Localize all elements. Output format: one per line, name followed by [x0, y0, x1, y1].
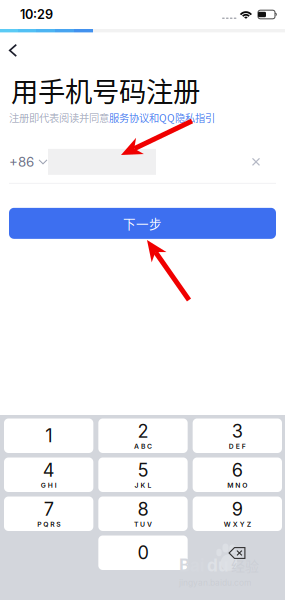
staticText: du	[207, 555, 229, 576]
button[interactable]: 7	[4, 496, 93, 531]
button[interactable]: Delete	[215, 536, 259, 570]
button[interactable]: 3	[193, 418, 282, 453]
staticText: 3	[232, 420, 243, 442]
staticText: P Q R S	[37, 520, 60, 528]
staticText: 7	[44, 498, 54, 520]
staticText: 0	[137, 542, 148, 564]
button[interactable]: 6	[193, 457, 282, 492]
staticText: J K L	[134, 481, 151, 489]
staticText: 经验	[231, 555, 259, 575]
staticText: 注册即代表阅读并同意	[9, 110, 109, 125]
staticText: 6	[232, 459, 243, 481]
button[interactable]: 下一步	[9, 208, 276, 239]
staticText: Bai	[179, 555, 205, 576]
staticText: A B C	[134, 442, 152, 450]
button[interactable]: 2	[98, 418, 188, 453]
button[interactable]: Clear	[247, 153, 265, 171]
staticText: +86	[9, 154, 34, 170]
staticText: 10:29	[20, 7, 53, 22]
button[interactable]: 服务协议和QQ隐私指引	[109, 110, 215, 125]
staticText: G H I	[41, 481, 57, 489]
button[interactable]: Back	[0, 38, 26, 62]
button[interactable]: 0	[98, 535, 188, 570]
button[interactable]: 9	[193, 496, 282, 531]
staticText: 2	[137, 420, 148, 442]
staticText: 服务协议和QQ隐私指引	[109, 110, 215, 125]
staticText: W X Y Z	[224, 520, 251, 528]
button[interactable]: 5	[98, 457, 188, 492]
staticText: 8	[137, 498, 148, 520]
staticText: 1	[45, 425, 52, 447]
staticText: D E F	[229, 442, 246, 450]
staticText: 9	[232, 498, 243, 520]
staticText: 用手机号码注册	[11, 70, 200, 110]
staticText: 4	[43, 459, 55, 481]
button[interactable]: 1	[4, 418, 93, 453]
staticText: 5	[137, 459, 148, 481]
button[interactable]: 8	[98, 496, 188, 531]
staticText: M N O	[227, 481, 247, 489]
button[interactable]: 4	[4, 457, 93, 492]
staticText: 下一步	[123, 214, 162, 232]
staticText: T U V	[134, 520, 152, 528]
